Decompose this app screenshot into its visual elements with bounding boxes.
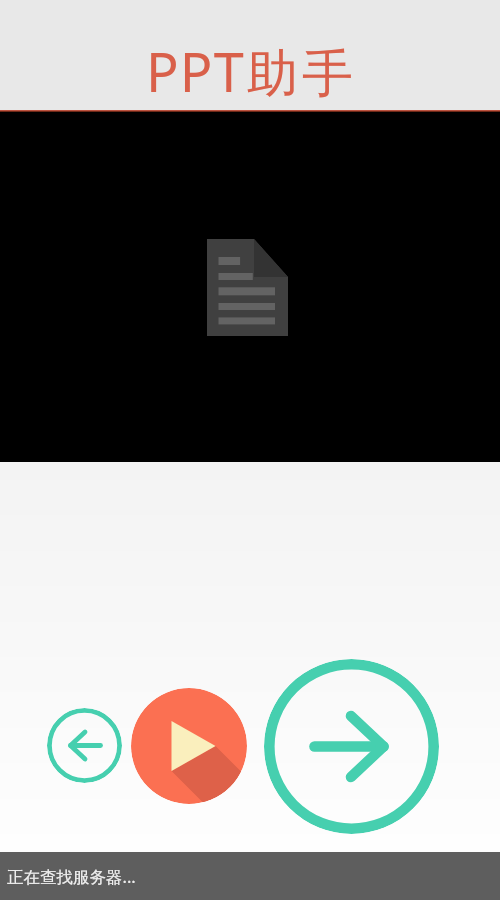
button[interactable]: Slide preview	[0, 112, 500, 462]
staticText: 正在查找服务器...	[7, 865, 136, 888]
button[interactable]: Play	[131, 688, 247, 804]
staticText: 助手	[245, 42, 355, 106]
button[interactable]: Next	[264, 659, 439, 834]
button[interactable]: Previous	[47, 708, 122, 783]
staticText: PPT	[146, 34, 245, 108]
